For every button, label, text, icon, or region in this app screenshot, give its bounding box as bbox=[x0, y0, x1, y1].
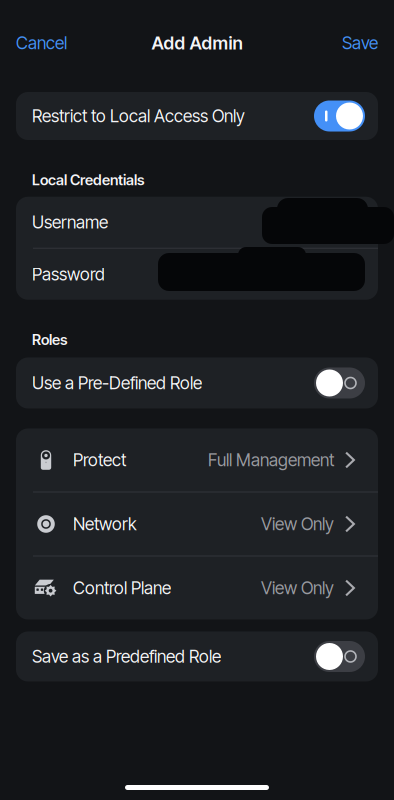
staticText: View Only bbox=[261, 577, 334, 598]
staticText: View Only bbox=[261, 513, 334, 534]
staticText: Cancel bbox=[16, 32, 67, 53]
staticText: Password bbox=[32, 264, 105, 285]
staticText: Username bbox=[32, 212, 108, 233]
button[interactable]: Restrict to Local Access Only bbox=[16, 92, 378, 140]
staticText: Roles bbox=[32, 331, 67, 348]
staticText: Local Credentials bbox=[32, 171, 144, 189]
button[interactable]: Use a Pre-Defined Role bbox=[16, 357, 378, 408]
button[interactable]: Control Plane bbox=[16, 556, 378, 619]
staticText: Save bbox=[342, 32, 378, 53]
staticText: Use a Pre-Defined Role bbox=[32, 372, 202, 393]
button[interactable]: Network bbox=[16, 492, 378, 555]
button[interactable]: Protect bbox=[16, 428, 378, 491]
staticText: Control Plane bbox=[73, 577, 171, 598]
staticText: Protect bbox=[73, 449, 126, 470]
staticText: Full Management bbox=[208, 449, 334, 470]
button[interactable]: Save as a Predefined Role bbox=[16, 631, 378, 681]
staticText: Network bbox=[73, 513, 137, 534]
staticText: Save as a Predefined Role bbox=[32, 646, 221, 667]
staticText: Add Admin bbox=[151, 32, 242, 54]
staticText: Restrict to Local Access Only bbox=[32, 105, 245, 126]
button[interactable]: Cancel bbox=[16, 23, 81, 62]
button[interactable]: Save bbox=[328, 23, 378, 62]
